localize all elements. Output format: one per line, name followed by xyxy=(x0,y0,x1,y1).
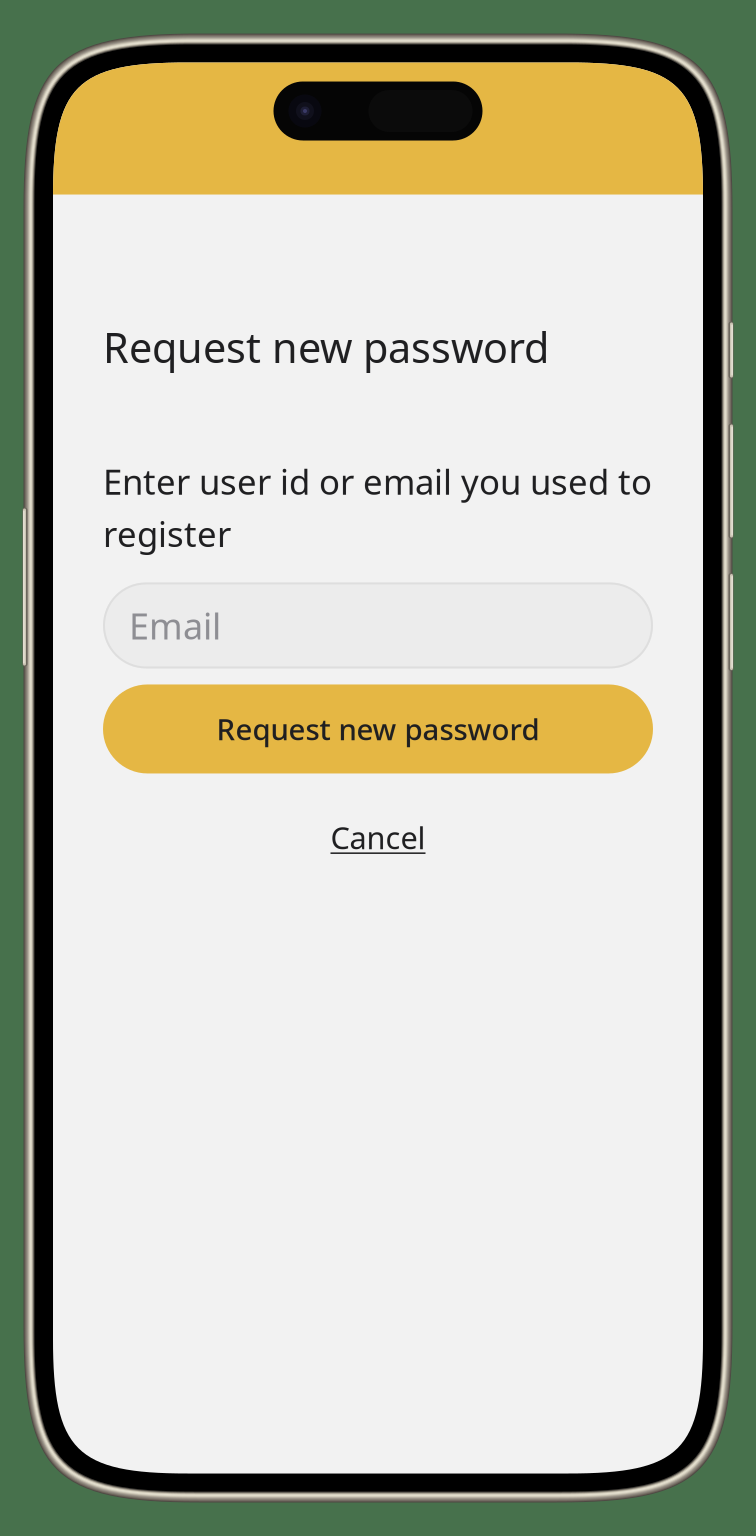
button[interactable]: Request new password xyxy=(103,684,653,773)
staticText: Request new password xyxy=(216,709,539,748)
staticText: Cancel xyxy=(330,817,425,858)
staticText: Enter user id or email you used to regis… xyxy=(103,458,652,556)
staticText: Email xyxy=(129,602,221,649)
staticText: Request new password xyxy=(103,319,549,374)
button[interactable]: Cancel xyxy=(103,807,653,867)
button[interactable]: Email xyxy=(103,582,653,668)
